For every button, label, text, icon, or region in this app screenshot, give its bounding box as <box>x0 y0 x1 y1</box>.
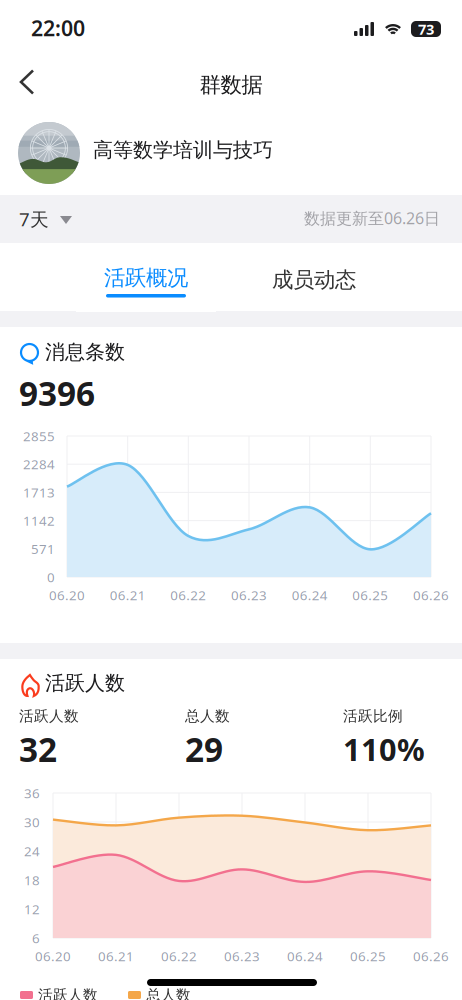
button[interactable]: 成员动态 <box>244 255 384 305</box>
staticText: 06.22 <box>161 947 197 965</box>
staticText: 36 <box>24 784 40 802</box>
staticText: 24 <box>24 842 40 860</box>
staticText: 6 <box>32 929 40 947</box>
staticText: 消息条数 <box>45 340 125 364</box>
staticText: 06.22 <box>170 586 206 604</box>
staticText: 06.23 <box>231 586 267 604</box>
staticText: 总人数 <box>185 707 230 725</box>
staticText: 06.24 <box>287 947 323 965</box>
button[interactable]: 活跃概况 <box>76 262 216 312</box>
staticText: 1713 <box>23 483 55 501</box>
staticText: 571 <box>31 540 55 558</box>
staticText: 12 <box>24 900 40 918</box>
staticText: 数据更新至06.26日 <box>304 207 440 229</box>
staticText: 06.23 <box>224 947 260 965</box>
staticText: 06.25 <box>352 586 388 604</box>
staticText: 18 <box>24 871 40 889</box>
staticText: 06.21 <box>98 947 134 965</box>
staticText: 2855 <box>23 427 55 445</box>
staticText: 活跃人数 <box>19 707 79 725</box>
staticText: 06.26 <box>413 586 449 604</box>
staticText: 29 <box>185 727 223 771</box>
staticText: 73 <box>418 19 434 39</box>
staticText: 110% <box>343 729 425 769</box>
button[interactable]: 高等数学培训与技巧 <box>0 112 462 194</box>
staticText: 9396 <box>19 371 95 415</box>
staticText: 活跃概况 <box>104 265 188 291</box>
staticText: 06.20 <box>35 947 71 965</box>
staticText: 32 <box>19 727 57 771</box>
staticText: 22:00 <box>31 14 85 42</box>
staticText: 06.26 <box>413 947 449 965</box>
staticText: 2284 <box>23 455 55 473</box>
staticText: 活跃人数 <box>45 671 125 695</box>
staticText: 06.20 <box>49 586 85 604</box>
staticText: 06.25 <box>350 947 386 965</box>
staticText: 活跃比例 <box>343 707 403 725</box>
staticText: 1142 <box>23 512 55 529</box>
staticText: 高等数学培训与技巧 <box>93 138 273 162</box>
staticText: 群数据 <box>199 72 262 98</box>
staticText: 06.21 <box>110 586 146 604</box>
staticText: 成员动态 <box>272 267 356 293</box>
staticText: 06.24 <box>292 586 328 604</box>
staticText: 0 <box>47 568 55 586</box>
staticText: 总人数 <box>146 986 191 1000</box>
button[interactable]: 7天 <box>19 201 99 237</box>
button[interactable]: Back <box>5 60 49 104</box>
staticText: 30 <box>24 813 40 831</box>
staticText: 活跃人数 <box>38 986 98 1000</box>
staticText: 7天 <box>19 207 49 231</box>
